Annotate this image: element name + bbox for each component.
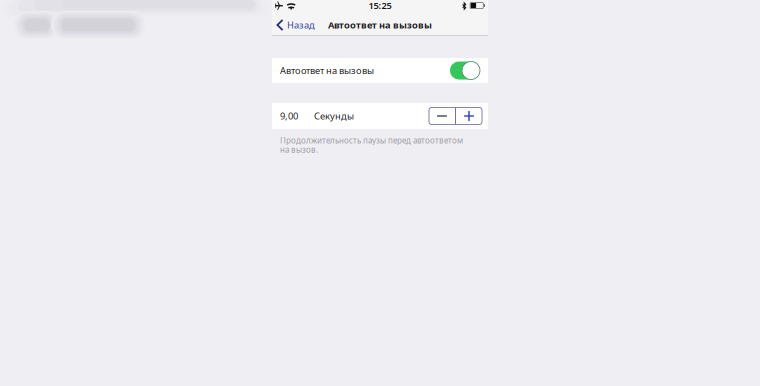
- staticText: 9,00: [280, 110, 298, 122]
- staticText: Автоответ на вызовы: [280, 64, 374, 77]
- button[interactable]: Автоответ на вызовы: [272, 58, 488, 83]
- button[interactable]: Уменьшить: [429, 107, 455, 124]
- staticText: Назад: [287, 19, 315, 31]
- button[interactable]: Увеличить: [456, 107, 482, 124]
- staticText: 15:25: [368, 0, 391, 12]
- staticText: Продолжительность паузы перед автоответо…: [280, 135, 463, 155]
- button[interactable]: Назад: [272, 15, 319, 35]
- staticText: Секунды: [314, 110, 354, 122]
- staticText: Автоответ на вызовы: [328, 19, 432, 31]
